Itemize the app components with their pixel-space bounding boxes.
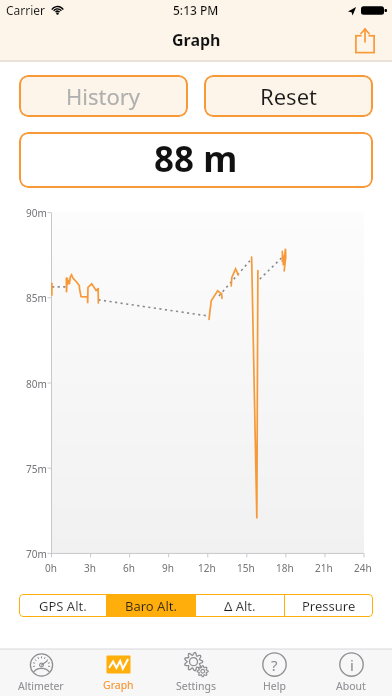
staticText: 12h — [198, 561, 216, 575]
staticText: Settings — [176, 679, 216, 693]
staticText: Help — [263, 679, 286, 693]
staticText: 75m — [26, 462, 47, 476]
staticText: History — [66, 81, 141, 111]
staticText: 70m — [26, 547, 47, 561]
staticText: ? — [271, 655, 278, 675]
button[interactable]: Graph — [81, 649, 155, 696]
staticText: i — [350, 655, 354, 675]
staticText: 0h — [45, 561, 57, 575]
staticText: 90m — [26, 206, 47, 220]
staticText: Baro Alt. — [125, 597, 177, 615]
staticText: 21h — [315, 561, 333, 575]
button[interactable]: 88 m — [19, 132, 373, 188]
staticText: 9h — [162, 561, 174, 575]
staticText: 24h — [354, 561, 372, 575]
staticText: 6h — [123, 561, 135, 575]
staticText: 3h — [84, 561, 96, 575]
button[interactable]: GPS Alt. — [19, 594, 106, 617]
staticText: 18h — [276, 561, 294, 575]
button[interactable]: Reset — [204, 75, 373, 117]
button[interactable]: Pressure — [285, 594, 373, 617]
staticText: Pressure — [302, 597, 356, 615]
staticText: Altimeter — [18, 679, 64, 693]
button[interactable]: i — [314, 649, 388, 696]
button[interactable]: History — [19, 75, 188, 117]
staticText: 85m — [26, 291, 47, 305]
staticText: 80m — [26, 377, 47, 391]
button[interactable]: Settings — [159, 649, 233, 696]
staticText: About — [336, 679, 366, 693]
staticText: 15h — [237, 561, 255, 575]
button[interactable]: Baro Alt. — [107, 594, 195, 617]
staticText: Δ Alt. — [224, 597, 256, 615]
staticText: Reset — [260, 81, 317, 111]
button[interactable]: Share — [348, 24, 382, 58]
staticText: GPS Alt. — [39, 597, 87, 615]
staticText: 88 m — [154, 135, 238, 183]
staticText: Graph — [103, 678, 134, 692]
staticText: Graph — [172, 29, 221, 51]
button[interactable]: Altimeter — [4, 649, 78, 696]
button[interactable]: ? — [237, 649, 311, 696]
staticText: 5:13 PM — [173, 2, 219, 18]
button[interactable]: Δ Alt. — [196, 594, 284, 617]
staticText: Carrier — [6, 2, 46, 18]
